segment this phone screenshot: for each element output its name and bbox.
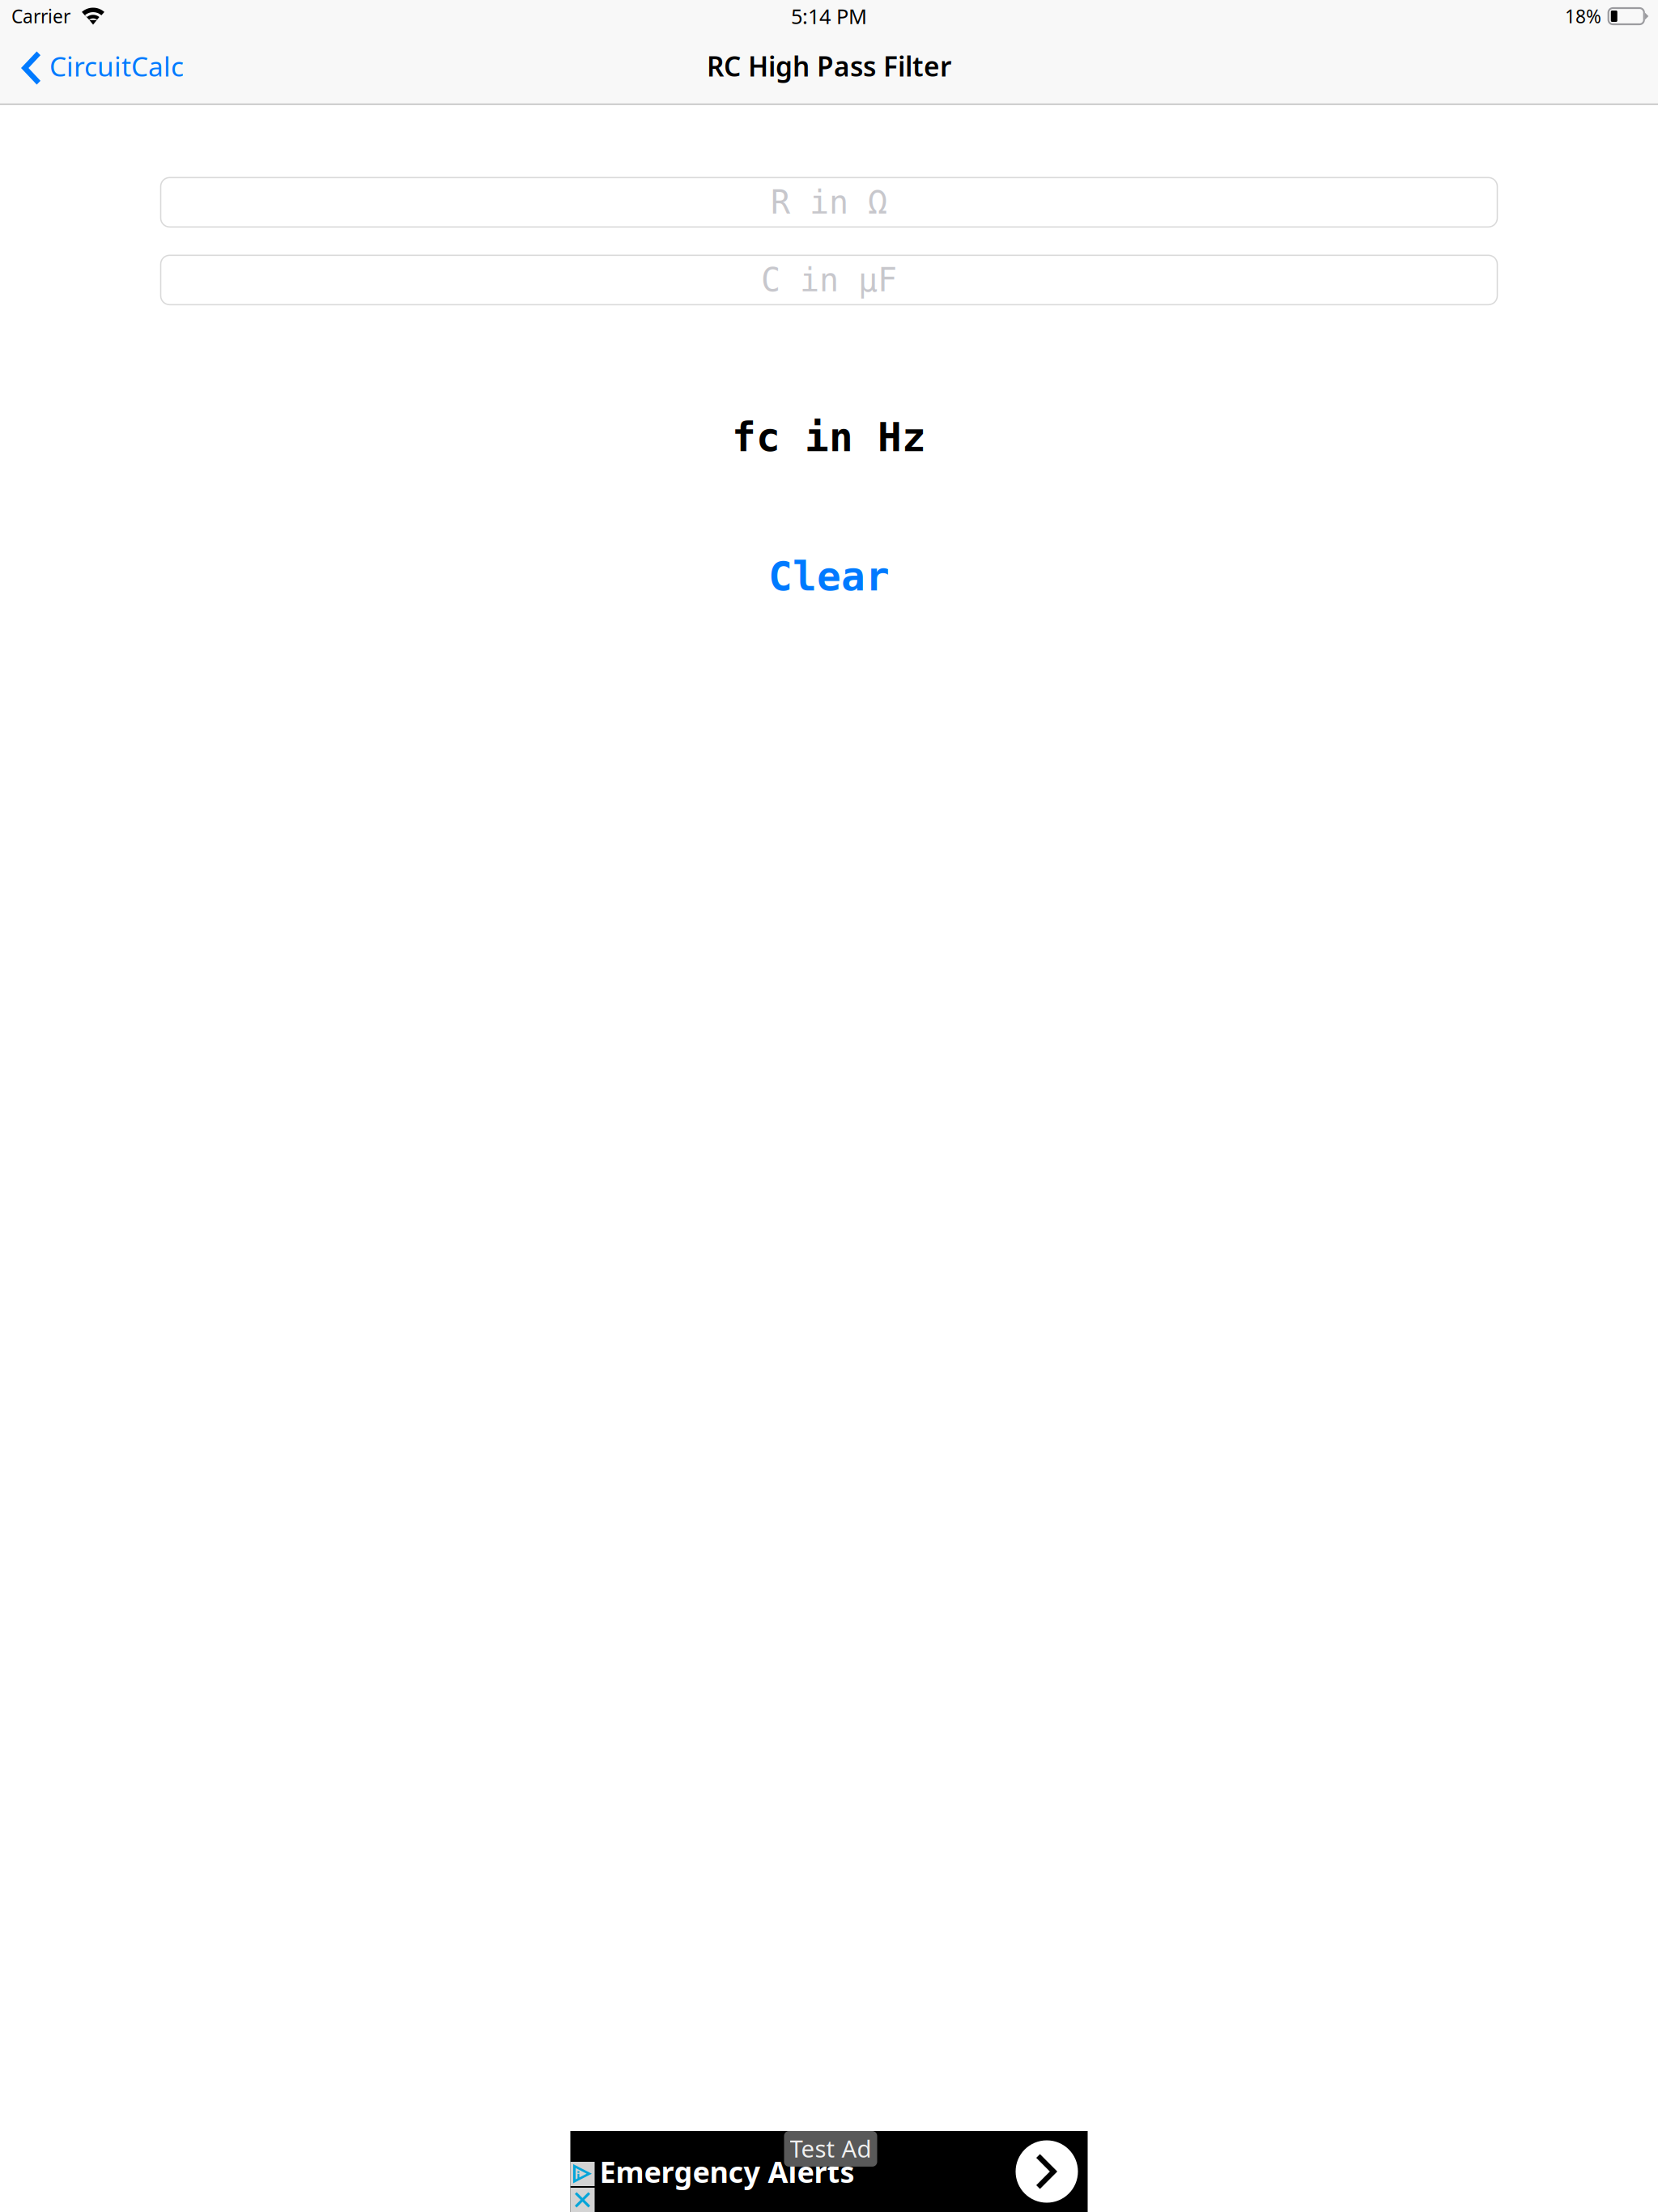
staticText: R in Ω xyxy=(771,184,887,221)
staticText: Clear xyxy=(768,554,890,599)
staticText: Test Ad xyxy=(790,2133,872,2164)
staticText: RC High Pass Filter xyxy=(707,48,951,84)
button[interactable]: Clear xyxy=(768,554,890,599)
button[interactable]: C in μF xyxy=(161,255,1497,305)
staticText: CircuitCalc xyxy=(49,48,184,84)
button[interactable]: R in Ω xyxy=(161,178,1497,227)
button[interactable]: CircuitCalc xyxy=(0,32,197,104)
staticText: 18% xyxy=(1565,4,1601,28)
staticText: C in μF xyxy=(761,262,897,298)
button[interactable]: Close ad xyxy=(570,2188,595,2212)
staticText: Carrier xyxy=(11,4,70,28)
staticText: 5:14 PM xyxy=(791,3,867,30)
button[interactable]: Ad choices xyxy=(570,2162,595,2186)
staticText: Emergency Alerts xyxy=(599,2152,855,2191)
button[interactable]: Emergency Alerts xyxy=(570,2131,1088,2212)
staticText: fc in Hz xyxy=(732,415,926,460)
